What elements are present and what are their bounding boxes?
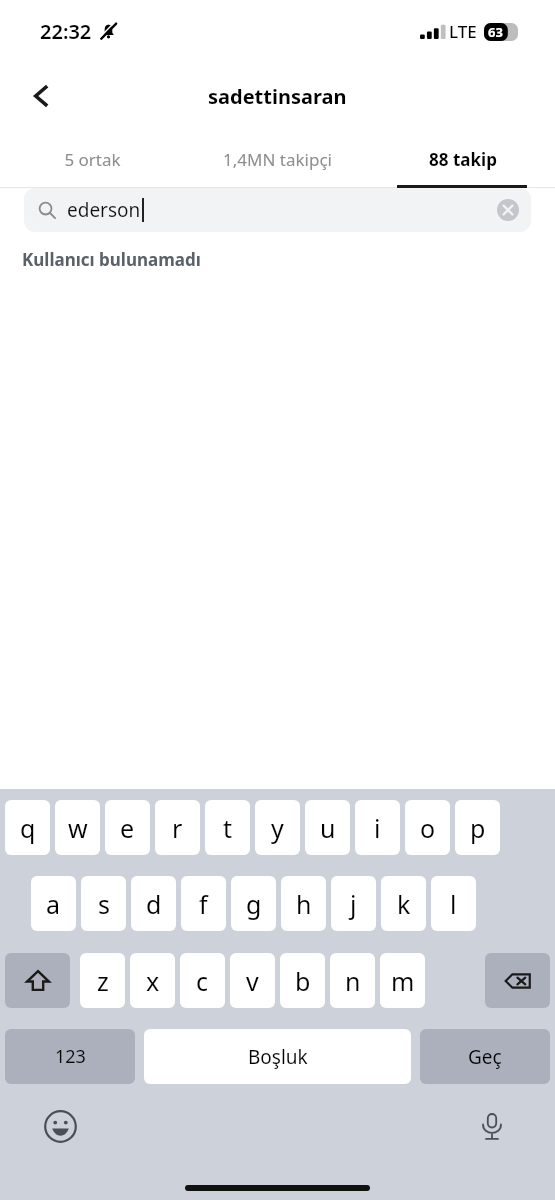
staticText: sadettinsaran (208, 83, 347, 110)
staticText: d (146, 887, 162, 921)
button[interactable]: 5 ortak (0, 130, 185, 188)
button[interactable]: k (381, 876, 426, 931)
button[interactable]: m (380, 953, 425, 1008)
button[interactable]: j (331, 876, 376, 931)
staticText: h (296, 887, 312, 921)
staticText: n (345, 964, 361, 998)
staticText: c (196, 964, 209, 998)
staticText: m (391, 964, 415, 998)
button[interactable]: e (105, 800, 150, 855)
button[interactable]: Delete (485, 953, 550, 1008)
button[interactable]: Back (14, 69, 68, 123)
button[interactable]: y (255, 800, 300, 855)
button[interactable]: p (455, 800, 500, 855)
button[interactable]: t (205, 800, 250, 855)
button[interactable]: Clear text (491, 193, 525, 227)
button[interactable]: b (280, 953, 325, 1008)
button[interactable]: 123 (5, 1029, 135, 1084)
button[interactable]: 1,4MN takipçi (185, 130, 370, 188)
staticText: i (374, 811, 381, 845)
button[interactable]: 88 takip (370, 130, 555, 188)
button[interactable]: w (55, 800, 100, 855)
staticText: 123 (55, 1044, 86, 1069)
staticText: p (470, 811, 486, 845)
button[interactable]: l (431, 876, 476, 931)
staticText: t (223, 811, 233, 845)
button[interactable]: ederson (24, 188, 531, 232)
staticText: x (146, 964, 160, 998)
button[interactable]: v (230, 953, 275, 1008)
button[interactable]: s (81, 876, 126, 931)
staticText: a (46, 887, 61, 921)
staticText: Boşluk (248, 1044, 308, 1070)
staticText: 88 takip (429, 148, 497, 171)
staticText: 1,4MN takipçi (223, 148, 332, 171)
button[interactable]: g (231, 876, 276, 931)
staticText: f (199, 887, 208, 921)
staticText: l (450, 887, 457, 921)
staticText: r (172, 811, 183, 845)
button[interactable]: c (180, 953, 225, 1008)
staticText: y (271, 811, 284, 845)
staticText: k (397, 887, 411, 921)
button[interactable]: u (305, 800, 350, 855)
staticText: o (420, 811, 436, 845)
button[interactable]: x (130, 953, 175, 1008)
staticText: 5 ortak (64, 148, 121, 171)
staticText: Geç (468, 1044, 502, 1070)
staticText: ederson (67, 197, 141, 223)
button[interactable]: h (281, 876, 326, 931)
staticText: j (350, 887, 357, 921)
staticText: 63 (488, 23, 503, 41)
button[interactable]: a (31, 876, 76, 931)
staticText: Kullanıcı bulunamadı (22, 248, 201, 271)
staticText: v (246, 964, 259, 998)
button[interactable]: Emoji (40, 1106, 80, 1146)
staticText: q (20, 811, 36, 845)
button[interactable]: z (80, 953, 125, 1008)
button[interactable]: i (355, 800, 400, 855)
staticText: z (97, 964, 109, 998)
button[interactable] (5, 953, 70, 1008)
staticText: e (120, 811, 135, 845)
button[interactable]: n (330, 953, 375, 1008)
staticText: u (320, 811, 336, 845)
staticText: b (295, 964, 311, 998)
button[interactable]: Dictate (472, 1106, 512, 1146)
button[interactable]: d (131, 876, 176, 931)
staticText: LTE (449, 20, 477, 43)
button[interactable]: Boşluk (144, 1029, 411, 1084)
staticText: s (98, 887, 110, 921)
staticText: g (246, 887, 262, 921)
button[interactable]: q (5, 800, 50, 855)
button[interactable]: o (405, 800, 450, 855)
button[interactable]: r (155, 800, 200, 855)
button[interactable]: f (181, 876, 226, 931)
button[interactable]: Geç (420, 1029, 550, 1084)
staticText: w (68, 811, 88, 845)
staticText: 22:32 (40, 18, 92, 45)
